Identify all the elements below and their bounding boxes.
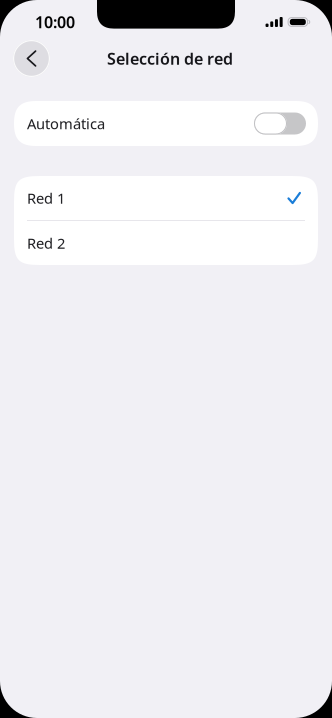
staticText: Red 2 xyxy=(27,233,65,253)
button[interactable]: Atrás xyxy=(13,40,50,77)
staticText: Automática xyxy=(27,114,105,133)
button[interactable]: Automática xyxy=(254,112,306,134)
staticText: Selección de red xyxy=(107,48,233,69)
staticText: 10:00 xyxy=(35,11,75,33)
staticText: Red 1 xyxy=(27,188,65,208)
button[interactable]: Red 2 xyxy=(14,221,318,265)
button[interactable]: Red 1 xyxy=(14,176,318,220)
